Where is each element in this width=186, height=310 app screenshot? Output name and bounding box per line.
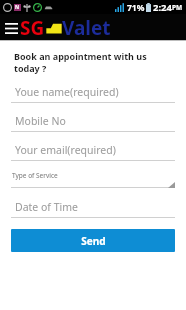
staticText: Valet <box>62 15 111 41</box>
staticText: Mobile No <box>15 114 66 128</box>
staticText: 2:24 <box>153 1 172 14</box>
staticText: Type of Service <box>12 171 58 180</box>
staticText: Your email(required) <box>15 143 116 157</box>
staticText: Book an appointment with us today ? <box>14 50 178 74</box>
staticText: 71% <box>127 2 145 14</box>
button[interactable]: Date of Time <box>11 200 175 218</box>
staticText: Date of Time <box>15 200 78 214</box>
staticText: N <box>15 4 20 11</box>
staticText: SG <box>20 15 45 41</box>
button[interactable]: Menu <box>3 18 19 38</box>
button[interactable]: Mobile No <box>11 114 175 132</box>
staticText: Youe name(required) <box>15 85 119 99</box>
staticText: PM <box>172 3 183 12</box>
button[interactable]: Your email(required) <box>11 143 175 161</box>
button[interactable]: Send <box>11 229 175 252</box>
button[interactable]: Type of Service <box>11 171 175 188</box>
button[interactable]: Youe name(required) <box>11 85 175 103</box>
staticText: Send <box>81 234 106 248</box>
